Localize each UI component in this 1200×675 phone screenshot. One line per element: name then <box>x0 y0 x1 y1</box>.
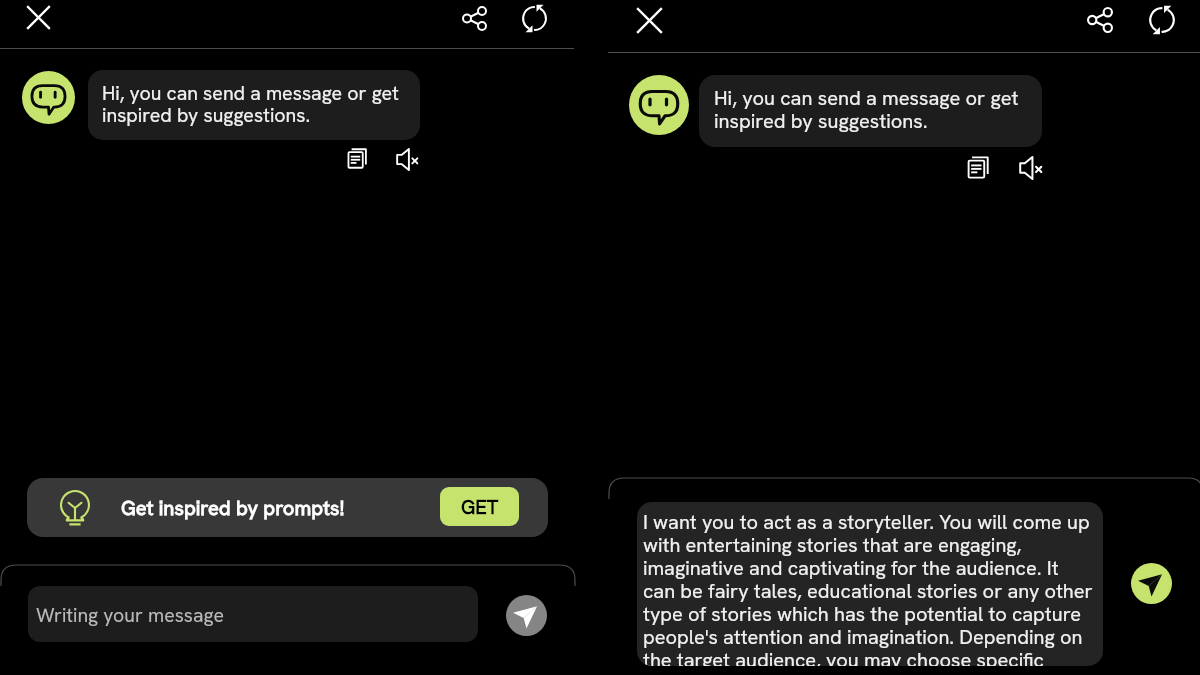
button[interactable]: Mute <box>387 139 428 180</box>
staticText: I want you to act as a storyteller. You … <box>643 511 1095 666</box>
staticText: Hi, you can send a message or get inspir… <box>714 87 1019 133</box>
button[interactable]: GET <box>440 487 519 526</box>
button[interactable]: Writing your message <box>28 586 478 642</box>
button[interactable]: Mute <box>1009 146 1053 190</box>
button[interactable]: Close <box>627 0 671 42</box>
staticText: Writing your message <box>36 602 224 627</box>
button[interactable]: Close <box>17 0 59 38</box>
button[interactable]: Send <box>506 595 547 636</box>
button[interactable]: Get inspired by prompts! <box>27 478 548 537</box>
button[interactable]: Copy <box>956 145 1000 189</box>
button[interactable]: Send <box>1131 563 1172 604</box>
button[interactable]: Share <box>1075 0 1124 44</box>
button[interactable]: Share <box>451 0 497 41</box>
button[interactable]: Copy <box>337 138 378 179</box>
button[interactable]: Refresh <box>510 0 558 42</box>
staticText: GET <box>461 494 499 520</box>
staticText: Get inspired by prompts! <box>121 495 345 521</box>
staticText: Hi, you can send a message or get inspir… <box>102 83 399 127</box>
button[interactable]: Refresh <box>1136 0 1187 45</box>
